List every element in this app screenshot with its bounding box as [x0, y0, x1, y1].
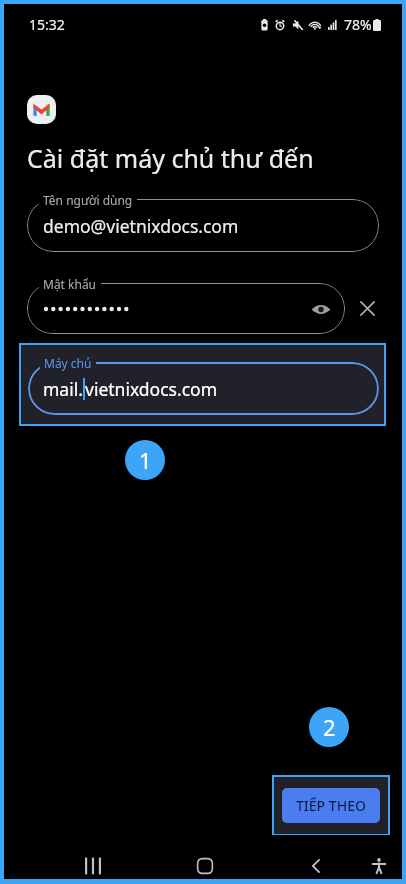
staticText: mail.: [43, 377, 83, 401]
staticText: Mật khẩu: [43, 276, 97, 292]
button[interactable]: Home: [176, 835, 234, 879]
staticText: 2: [323, 712, 336, 742]
staticText: 78%: [344, 15, 372, 34]
button[interactable]: Recent apps: [64, 835, 122, 879]
staticText: Máy chủ: [44, 355, 92, 371]
button[interactable]: Show password: [27, 283, 345, 334]
button[interactable]: Back: [287, 835, 345, 879]
button[interactable]: Clear: [353, 294, 381, 322]
staticText: 15:32: [29, 15, 65, 34]
staticText: Tên người dùng: [43, 192, 133, 208]
button[interactable]: Show password: [308, 296, 334, 322]
button[interactable]: TIẾP THEO: [282, 788, 380, 823]
button[interactable]: mail.: [28, 362, 379, 415]
staticText: Cài đặt máy chủ thư đến: [27, 141, 314, 175]
staticText: 1: [139, 445, 152, 475]
staticText: TIẾP THEO: [296, 796, 366, 815]
button[interactable]: Accessibility: [350, 835, 406, 879]
staticText: demo@vietnixdocs.com: [43, 214, 239, 238]
button[interactable]: demo@vietnixdocs.com: [27, 199, 379, 252]
button[interactable]: 1: [125, 440, 165, 480]
button[interactable]: 2: [309, 707, 349, 747]
staticText: vietnixdocs.com: [85, 377, 218, 401]
